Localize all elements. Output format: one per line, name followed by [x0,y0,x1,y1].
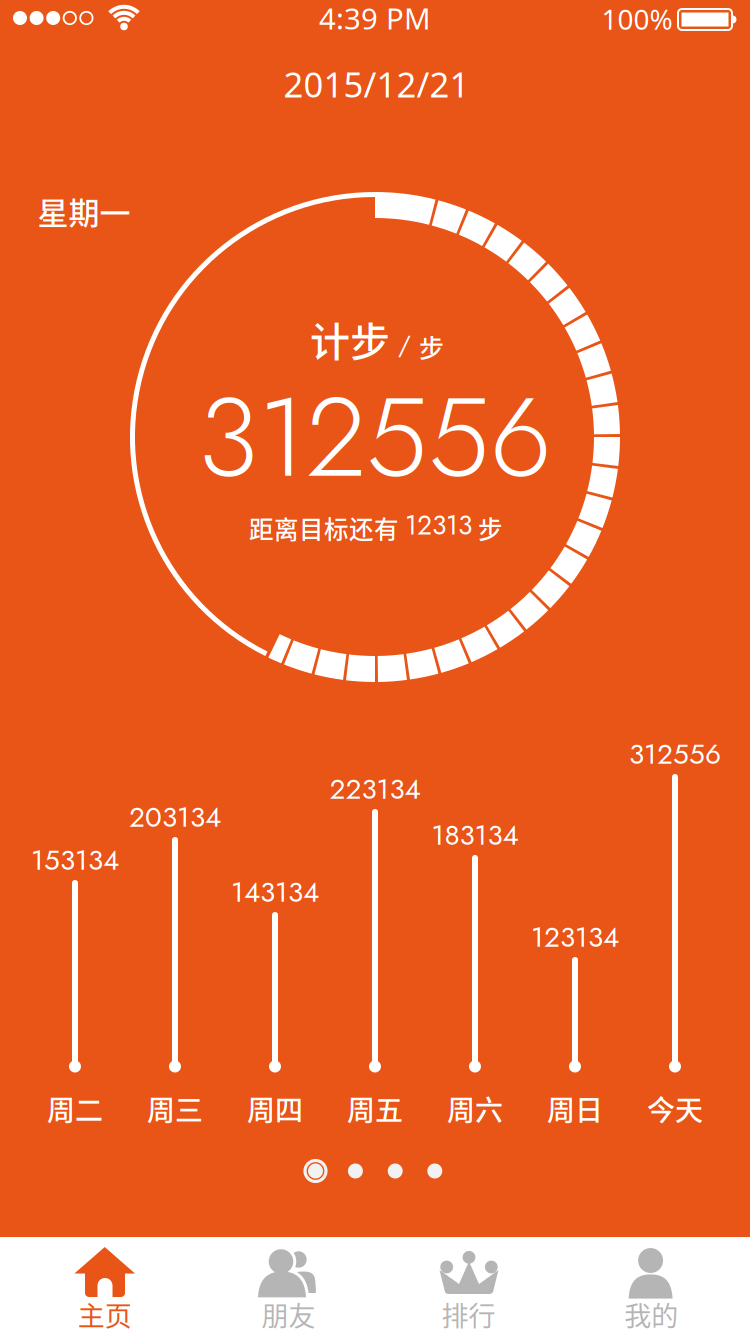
staticText: 周三 [147,1088,203,1129]
staticText: 312556 [198,358,552,517]
staticText: 计步 / 步 [310,311,444,367]
staticText: 星期一 [37,189,130,233]
staticText: 朋友 [262,1295,316,1334]
staticText: 周五 [347,1088,403,1129]
staticText: 主页 [78,1295,132,1334]
staticText: 今天 [647,1088,703,1129]
staticText: 周日 [547,1088,603,1129]
staticText: 123134 [531,917,619,957]
staticText: 143134 [231,872,319,912]
staticText: 100% [601,0,672,38]
staticText: 排行 [441,1295,495,1334]
staticText: 周二 [47,1088,103,1129]
staticText: 203134 [129,797,221,837]
staticText: 153134 [31,840,119,880]
staticText: 183134 [431,815,518,855]
staticText: 312556 [629,734,721,774]
staticText: 我的 [624,1295,678,1334]
staticText: 2015/12/21 [283,61,469,107]
staticText: 周四 [247,1088,303,1129]
staticText: 223134 [329,769,420,809]
staticText: 4:39 PM [319,0,431,37]
staticText: 距离目标还有 12313 步 [249,507,503,545]
staticText: 周六 [447,1088,503,1129]
